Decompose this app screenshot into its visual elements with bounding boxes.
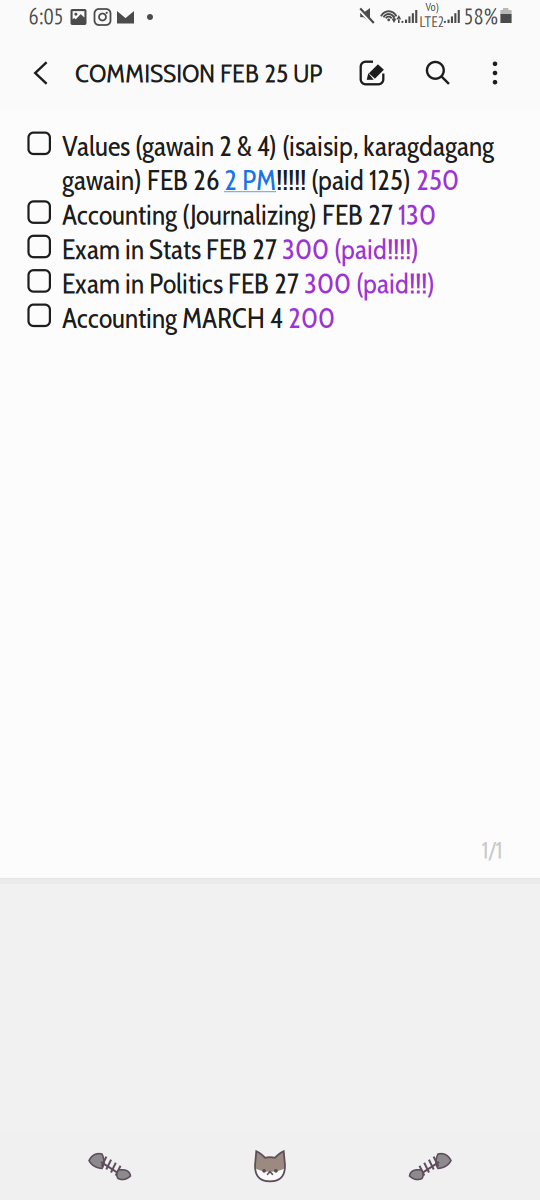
button[interactable]: Recent apps [380, 1132, 480, 1200]
button[interactable]: Back [15, 41, 67, 105]
button[interactable]: Edit note [346, 41, 398, 105]
staticText: 58% [463, 1, 497, 31]
button[interactable]: More options [473, 41, 517, 105]
staticText: COMMISSION FEB 25 UP [75, 57, 322, 89]
staticText: Exam in Stats FEB 27 300 (paid!!!!) [62, 232, 419, 266]
button[interactable]: Back [60, 1132, 160, 1200]
staticText: Vo) [425, 0, 438, 14]
staticText: 1/1 [481, 835, 502, 865]
button[interactable]: Accounting (Journalizing) FEB 27 130 [0, 198, 540, 232]
button[interactable]: Exam in Politics FEB 27 300 (paid!!!) [0, 267, 540, 301]
button[interactable]: Values (gawain 2 & 4) (isaisip, karagdag… [0, 129, 540, 198]
button[interactable]: Exam in Stats FEB 27 300 (paid!!!!) [0, 232, 540, 267]
staticText: Values (gawain 2 & 4) (isaisip, karagdag… [62, 129, 494, 197]
button[interactable]: Home [220, 1132, 320, 1200]
staticText: LTE2 [419, 12, 444, 31]
staticText: Accounting MARCH 4 200 [62, 301, 335, 335]
staticText: 6:05 [28, 1, 63, 31]
staticText: Exam in Politics FEB 27 300 (paid!!!) [62, 267, 435, 301]
button[interactable]: Search [412, 41, 464, 105]
button[interactable]: Accounting MARCH 4 200 [0, 301, 540, 335]
staticText: Accounting (Journalizing) FEB 27 130 [62, 198, 436, 232]
